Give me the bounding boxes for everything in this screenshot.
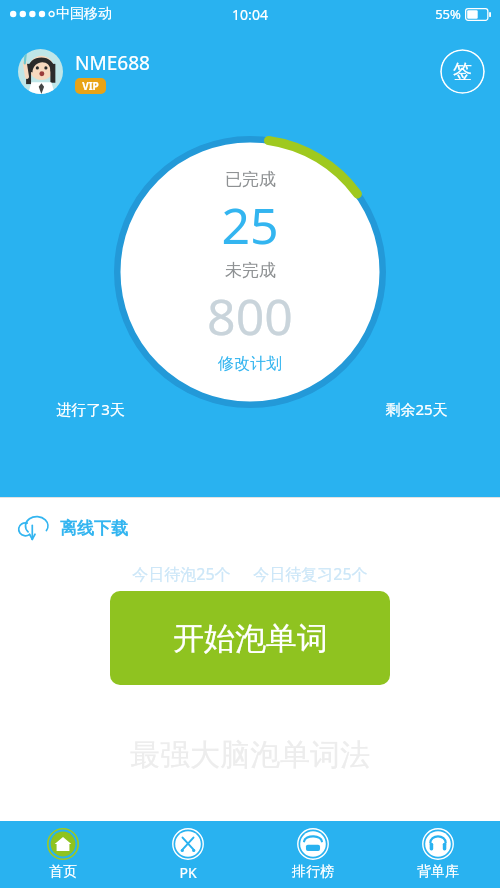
staticText: 开始泡单词 bbox=[173, 619, 328, 658]
staticText: 未完成 bbox=[225, 260, 276, 281]
staticText: 背单库 bbox=[417, 863, 459, 881]
staticText: 排行榜 bbox=[292, 863, 334, 881]
staticText: 最强大脑泡单词法 bbox=[130, 736, 370, 774]
staticText: 10:04 bbox=[232, 5, 268, 24]
staticText: 已完成 bbox=[225, 169, 276, 190]
staticText: VIP bbox=[82, 79, 99, 93]
button[interactable]: 首页 bbox=[0, 821, 125, 888]
staticText: 签 bbox=[453, 60, 472, 84]
staticText: 今日待复习25个 bbox=[253, 563, 368, 585]
staticText: 首页 bbox=[49, 863, 77, 881]
staticText: 进行了3天 bbox=[56, 399, 125, 419]
button[interactable]: 离线下载 bbox=[0, 506, 500, 550]
staticText: PK bbox=[179, 863, 197, 882]
button[interactable]: 排行榜 bbox=[250, 821, 375, 888]
button[interactable]: 签到 bbox=[440, 49, 485, 94]
staticText: 离线下载 bbox=[60, 518, 128, 539]
staticText: 800 bbox=[207, 282, 293, 350]
staticText: 25 bbox=[221, 191, 279, 259]
staticText: 中国移动 bbox=[56, 5, 112, 23]
staticText: 55% bbox=[435, 5, 461, 23]
button[interactable]: 修改计划 bbox=[212, 352, 288, 376]
staticText: 修改计划 bbox=[218, 354, 282, 374]
staticText: 今日待泡25个 bbox=[132, 563, 231, 585]
staticText: NME688 bbox=[75, 50, 150, 76]
button[interactable]: 开始泡单词 bbox=[110, 591, 390, 685]
button[interactable]: NME688 bbox=[18, 49, 150, 94]
staticText: 剩余25天 bbox=[385, 399, 448, 419]
button[interactable]: PK bbox=[125, 821, 250, 888]
button[interactable]: 背单库 bbox=[375, 821, 500, 888]
